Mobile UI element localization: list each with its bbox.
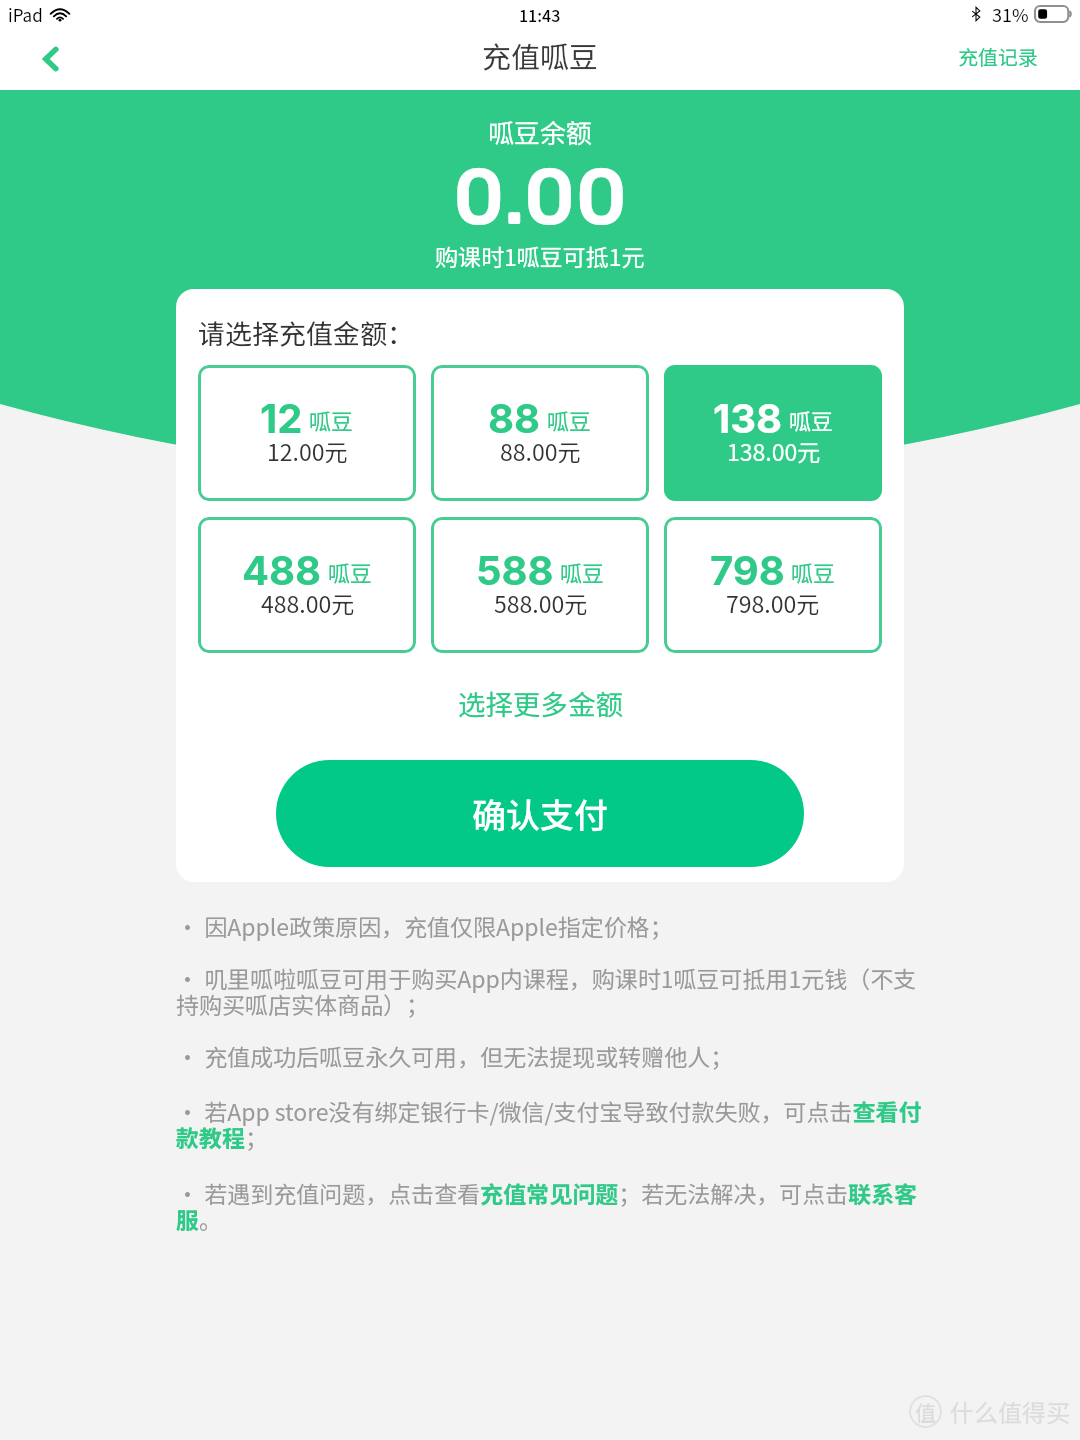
button[interactable]: 12 [198, 365, 416, 501]
button[interactable]: 确认支付 [276, 760, 804, 867]
staticText: 请选择充值金额： [198, 313, 414, 352]
staticText: 798.00元 [726, 586, 820, 619]
staticText: 呱豆 [309, 404, 354, 436]
staticText: 充值记录 [958, 42, 1038, 71]
staticText: 138 [713, 394, 783, 442]
button[interactable]: 138 [664, 365, 882, 501]
staticText: 798 [710, 546, 785, 594]
staticText: 588 [476, 546, 554, 594]
staticText: 588.00元 [494, 586, 588, 619]
staticText: 31% [992, 1, 1029, 27]
staticText: • 若遇到充值问题，点击查看充值常见问题；若无法解决，可点击联系客服。 [176, 1176, 934, 1235]
button[interactable]: 798 [664, 517, 882, 653]
staticText: 88 [488, 394, 541, 442]
staticText: 什么值得买 [950, 1394, 1070, 1429]
staticText: • 充值成功后呱豆永久可用，但无法提现或转赠他人； [176, 1039, 734, 1072]
staticText: 138.00元 [727, 434, 821, 467]
staticText: 12.00元 [267, 434, 348, 467]
staticText: 呱豆 [791, 556, 836, 588]
staticText: 呱豆 [789, 404, 834, 436]
staticText: • 叽里呱啦呱豆可用于购买App内课程，购课时1呱豆可抵用1元钱（不支持购买呱店… [176, 961, 934, 1020]
staticText: 购课时1呱豆可抵1元 [435, 239, 645, 272]
staticText: 呱豆 [328, 556, 373, 588]
staticText: 呱豆 [560, 556, 605, 588]
staticText: 488 [242, 546, 322, 594]
button[interactable]: 588 [431, 517, 649, 653]
staticText: 488.00元 [261, 586, 355, 619]
staticText: 确认支付 [472, 789, 608, 838]
staticText: 呱豆 [547, 404, 592, 436]
button[interactable]: 选择更多金额 [444, 679, 637, 727]
staticText: • 因Apple政策原因，充值仅限Apple指定价格； [176, 909, 673, 942]
staticText: iPad [8, 2, 43, 27]
staticText: 11:43 [519, 3, 561, 26]
staticText: 88.00元 [500, 434, 581, 467]
staticText: 呱豆余额 [488, 113, 593, 151]
staticText: 充值呱豆 [482, 34, 599, 76]
staticText: • 若App store没有绑定银行卡/微信/支付宝导致付款失败，可点击查看付款… [176, 1094, 934, 1153]
button[interactable]: 充值记录 [916, 28, 1080, 85]
staticText: 值 [915, 1397, 936, 1427]
staticText: 选择更多金额 [458, 683, 623, 723]
button[interactable]: 488 [198, 517, 416, 653]
button[interactable]: 返回 [0, 28, 100, 90]
staticText: 0.00 [453, 151, 627, 244]
button[interactable]: 88 [431, 365, 649, 501]
staticText: 12 [260, 394, 303, 442]
